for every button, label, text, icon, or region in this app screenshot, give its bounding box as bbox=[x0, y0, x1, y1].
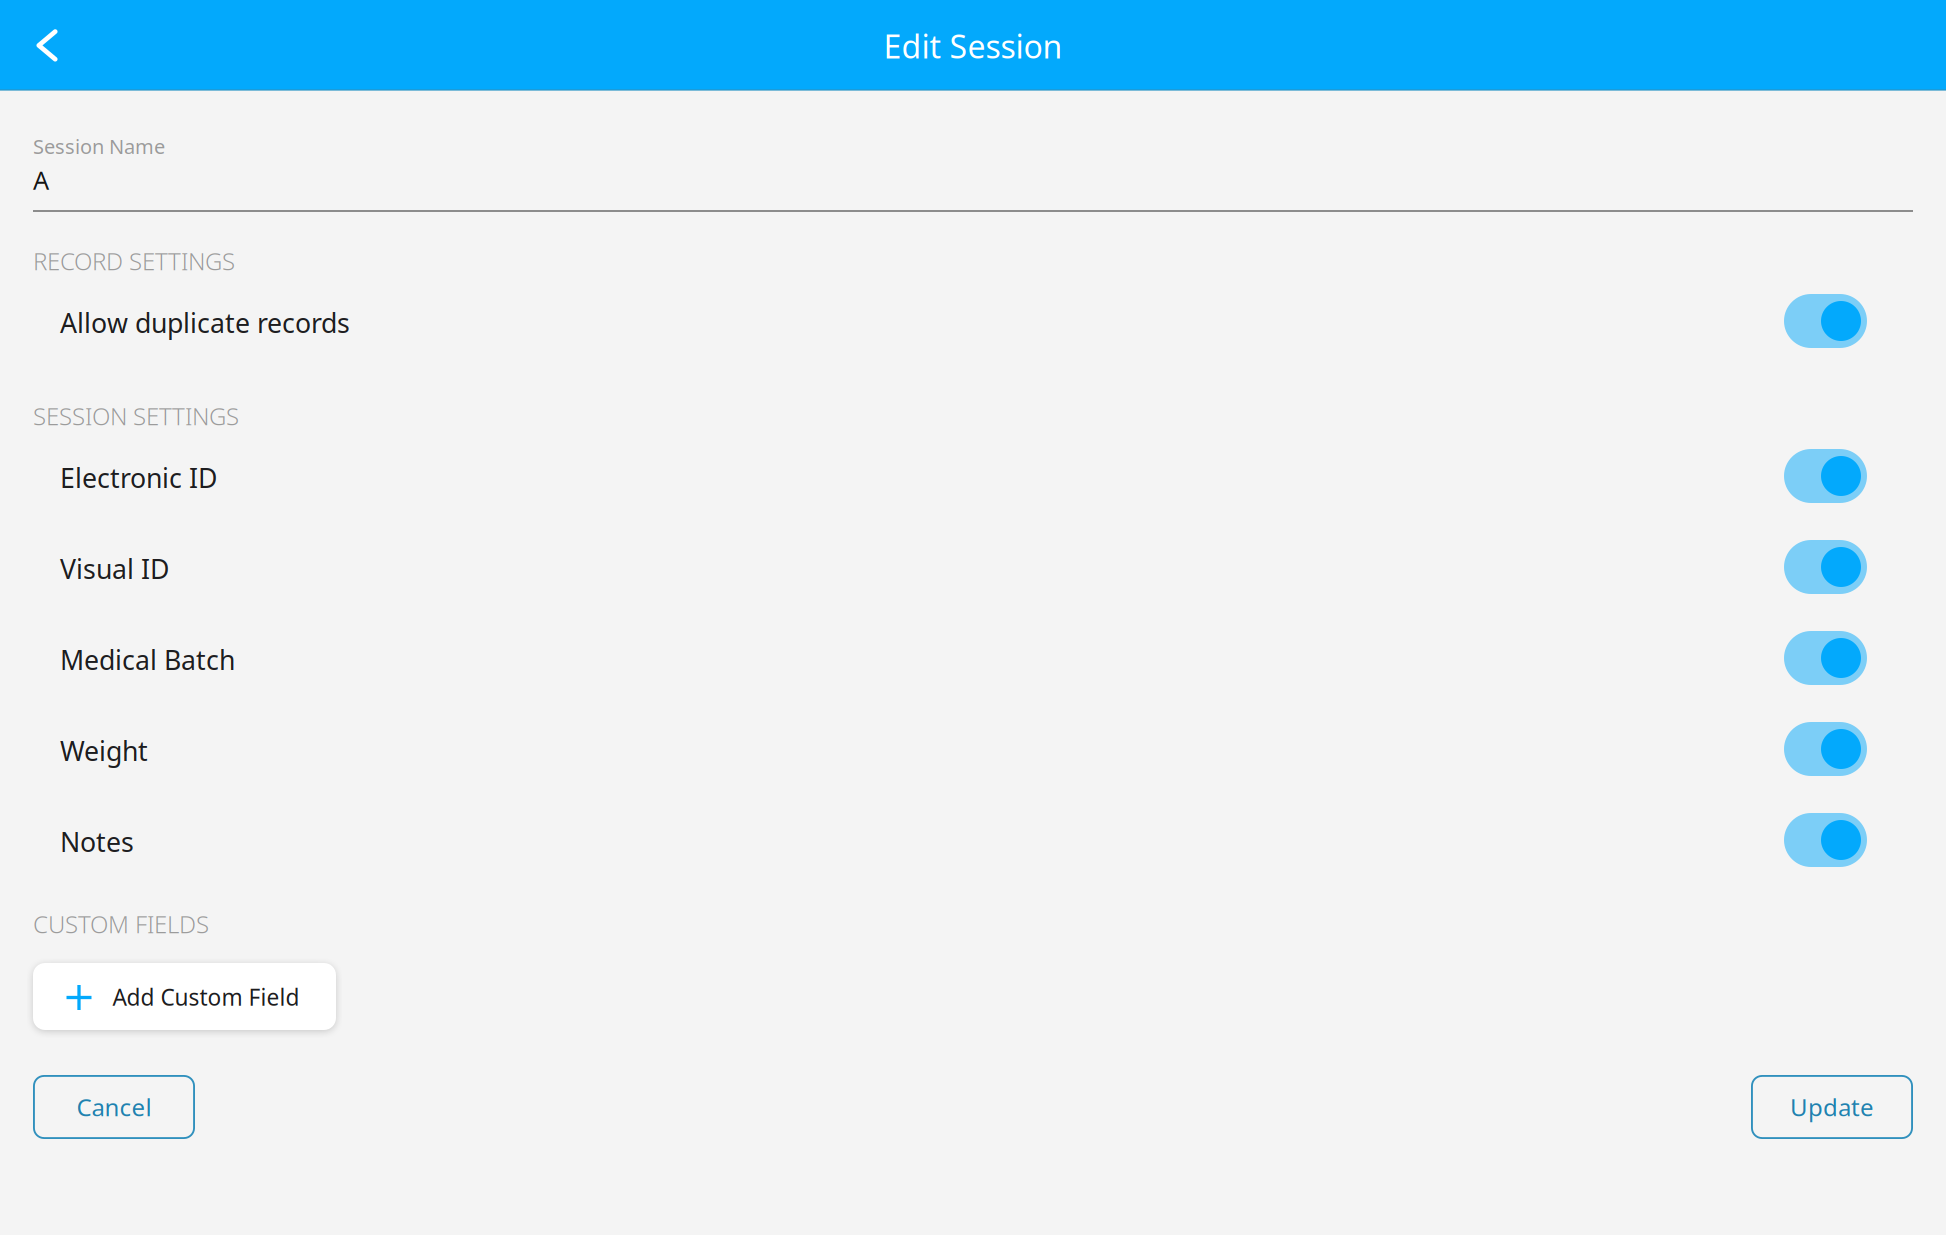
staticText: Allow duplicate records bbox=[60, 305, 350, 340]
staticText: Visual ID bbox=[60, 551, 169, 586]
staticText: SESSION SETTINGS bbox=[33, 400, 239, 432]
button[interactable]: Add Custom Field bbox=[33, 963, 336, 1030]
staticText: Electronic ID bbox=[60, 460, 217, 495]
button[interactable]: Medical Batch bbox=[33, 626, 1913, 692]
button[interactable]: Cancel bbox=[33, 1075, 195, 1139]
staticText: Add Custom Field bbox=[112, 982, 299, 1012]
button[interactable]: Visual ID bbox=[33, 535, 1913, 601]
staticText: Edit Session bbox=[883, 25, 1062, 67]
staticText: Session Name bbox=[33, 133, 165, 160]
staticText: Notes bbox=[60, 824, 134, 859]
staticText: Update bbox=[1790, 1091, 1874, 1123]
button[interactable]: Weight bbox=[33, 717, 1913, 783]
button[interactable]: Notes bbox=[33, 808, 1913, 874]
button[interactable]: Update bbox=[1751, 1075, 1913, 1139]
staticText: A bbox=[33, 163, 49, 197]
button[interactable]: Allow duplicate records bbox=[33, 289, 1913, 355]
staticText: CUSTOM FIELDS bbox=[33, 908, 209, 940]
button[interactable]: Electronic ID bbox=[33, 444, 1913, 510]
staticText: Weight bbox=[60, 733, 148, 768]
staticText: Cancel bbox=[76, 1091, 151, 1123]
staticText: Medical Batch bbox=[60, 642, 235, 677]
button[interactable]: Back bbox=[11, 8, 81, 82]
staticText: RECORD SETTINGS bbox=[33, 245, 235, 277]
